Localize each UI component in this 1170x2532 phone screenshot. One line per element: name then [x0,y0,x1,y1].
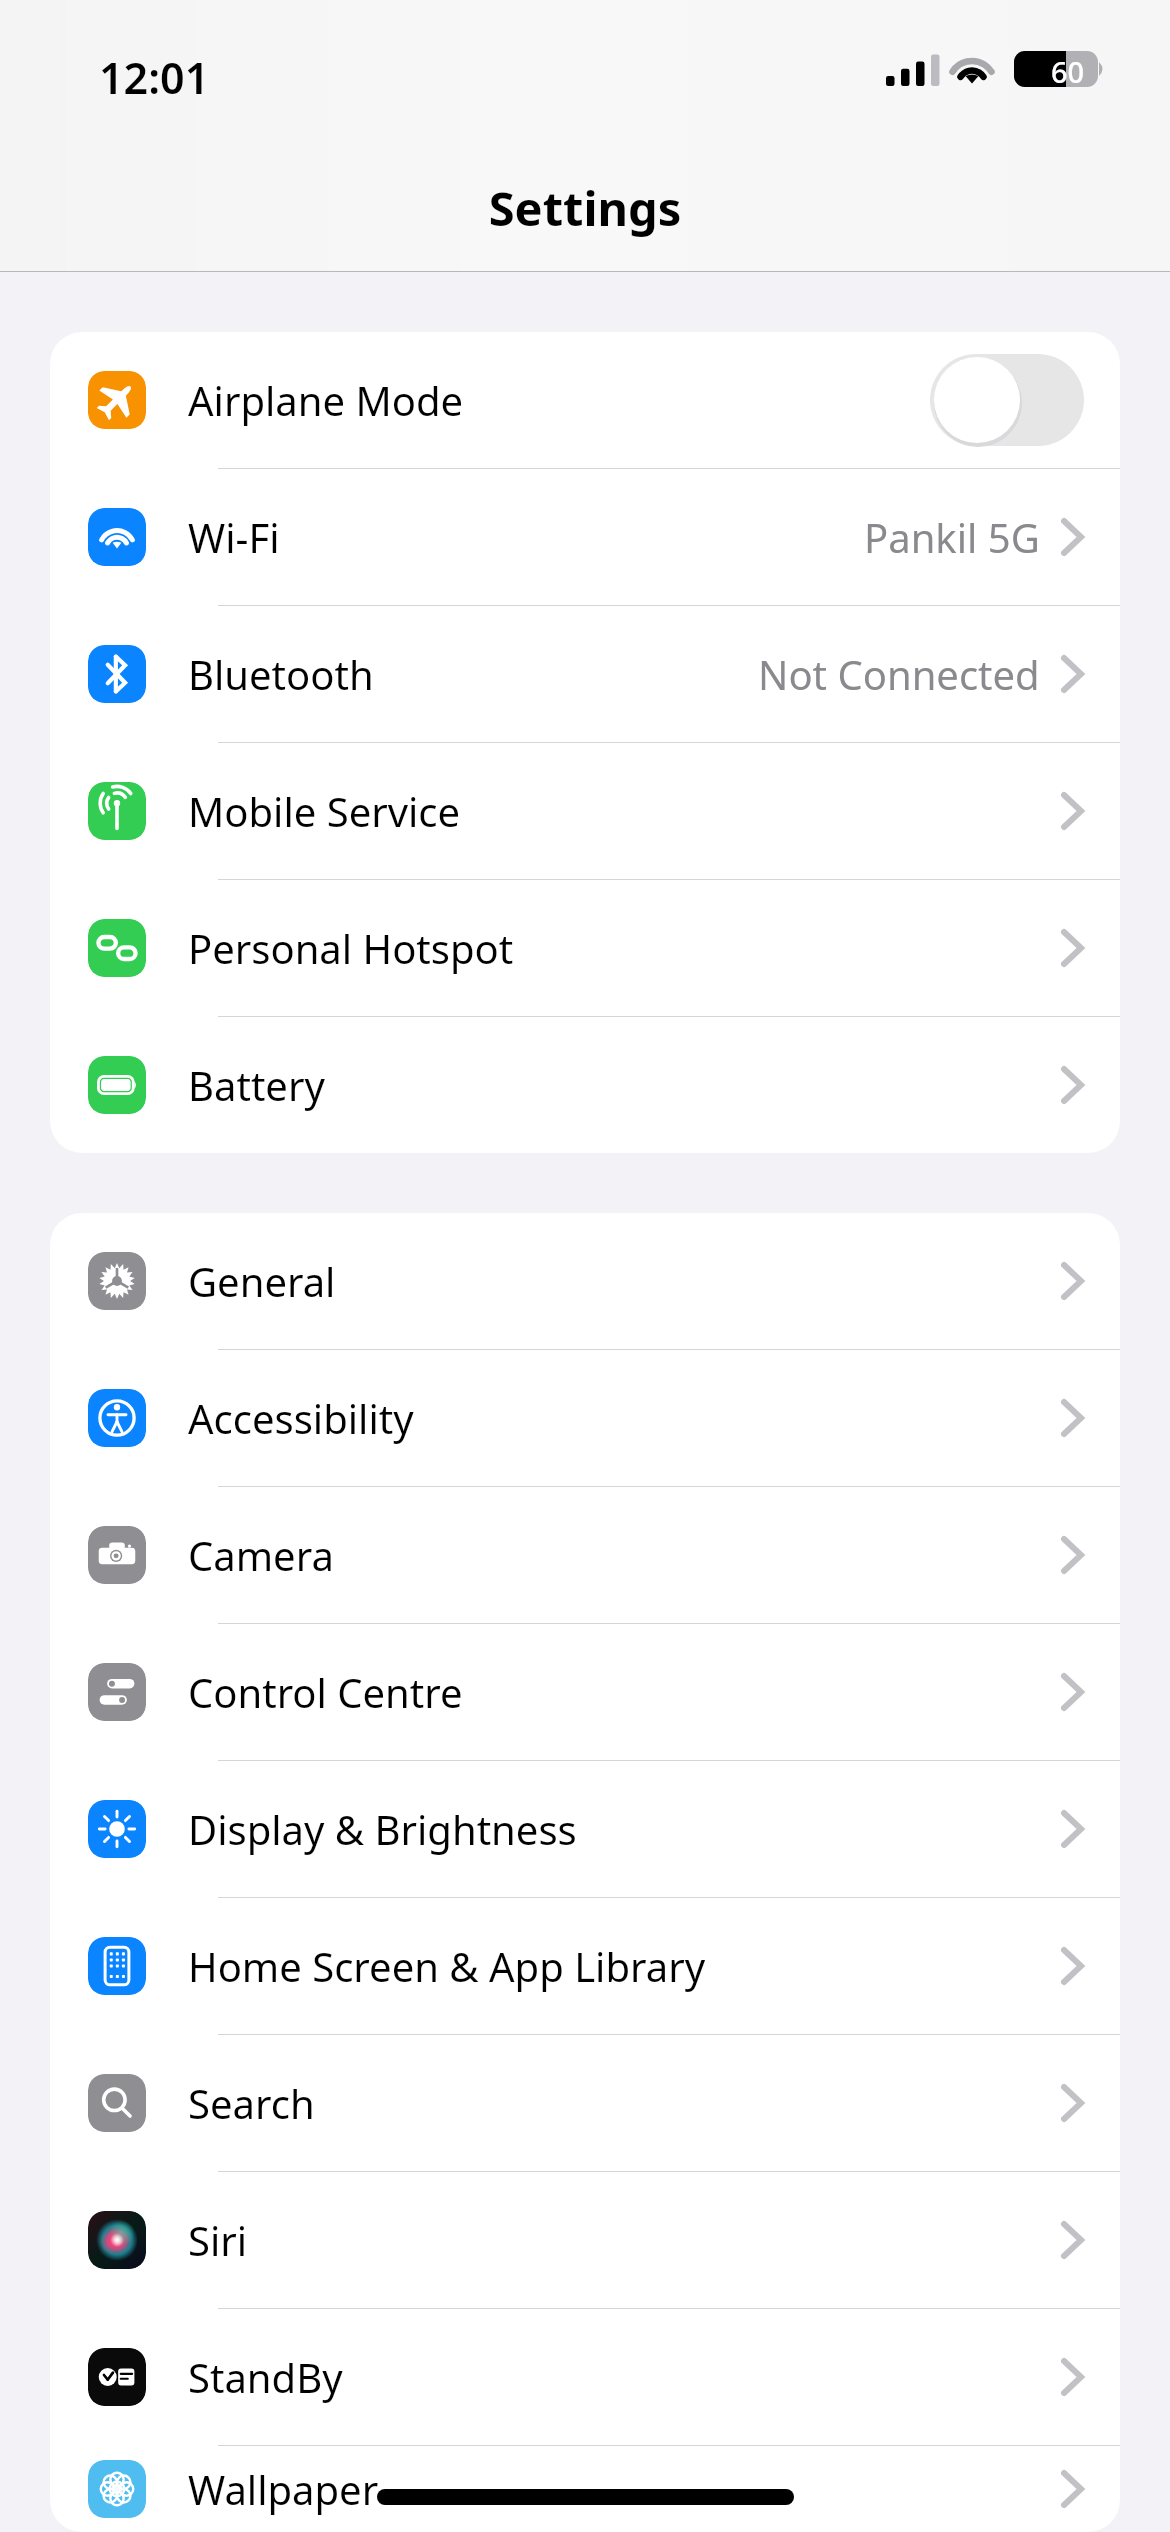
staticText: Pankil 5G [864,510,1040,564]
button[interactable]: Wallpaper [50,2446,1120,2532]
staticText: Control Centre [188,1665,1062,1719]
button[interactable]: Airplane Mode [50,332,1120,468]
button[interactable]: Display & Brightness [50,1761,1120,1897]
button[interactable]: General [50,1213,1120,1349]
button[interactable]: Bluetooth [50,606,1120,742]
staticText: Mobile Service [188,784,1062,838]
button[interactable]: Wi-Fi [50,469,1120,605]
button[interactable]: Mobile Service [50,743,1120,879]
staticText: Settings [0,176,1170,240]
button[interactable]: Siri [50,2172,1120,2308]
staticText: Search [188,2076,1062,2130]
staticText: Display & Brightness [188,1802,1062,1856]
staticText: Camera [188,1528,1062,1582]
staticText: General [188,1254,1062,1308]
button[interactable]: StandBy [50,2309,1120,2445]
staticText: Battery [188,1058,1062,1112]
staticText: Wi-Fi [188,510,864,564]
button[interactable]: Airplane Mode toggle [930,354,1084,446]
staticText: Not Connected [758,647,1040,701]
staticText: 12:01 [99,48,210,107]
staticText: Personal Hotspot [188,921,1062,975]
staticText: Wallpaper [188,2462,1062,2516]
button[interactable]: Personal Hotspot [50,880,1120,1016]
button[interactable]: Battery [50,1017,1120,1153]
button[interactable]: Accessibility [50,1350,1120,1486]
button[interactable]: Control Centre [50,1624,1120,1760]
button[interactable]: Camera [50,1487,1120,1623]
staticText: 60 [1051,52,1085,91]
staticText: Bluetooth [188,647,758,701]
staticText: Accessibility [188,1391,1062,1445]
staticText: StandBy [188,2350,1062,2404]
button[interactable]: Search [50,2035,1120,2171]
staticText: Siri [188,2213,1062,2267]
button[interactable]: Home Screen & App Library [50,1898,1120,2034]
staticText: Home Screen & App Library [188,1939,1062,1993]
staticText: Airplane Mode [188,373,930,427]
